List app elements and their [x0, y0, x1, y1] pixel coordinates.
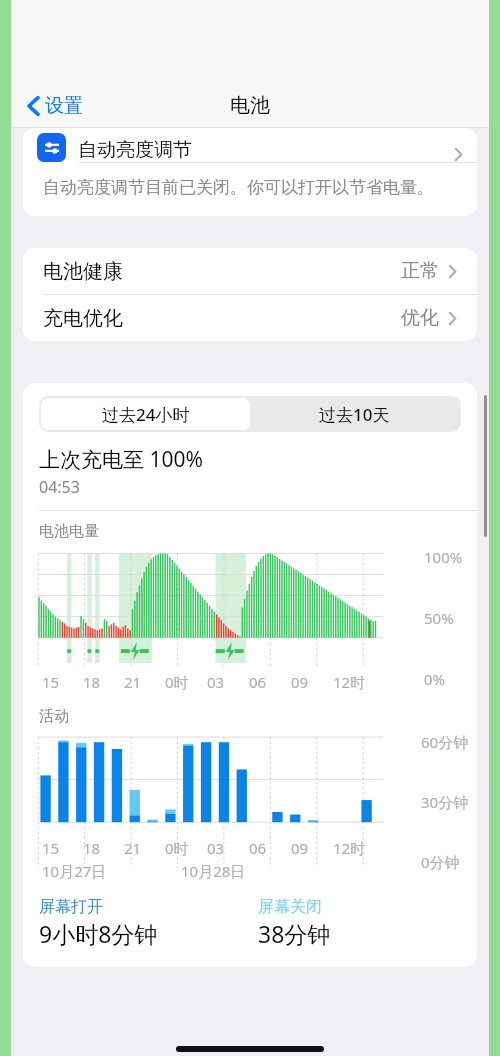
- staticText: 09: [291, 838, 309, 858]
- staticText: 18: [83, 672, 101, 692]
- staticText: 38分钟: [258, 918, 331, 949]
- staticText: 0时: [165, 672, 189, 692]
- staticText: 0时: [165, 838, 189, 858]
- staticText: 正常: [401, 259, 439, 283]
- staticText: 04:53: [39, 476, 80, 498]
- staticText: 过去10天: [319, 403, 390, 426]
- staticText: 过去24小时: [102, 403, 190, 426]
- staticText: 21: [124, 838, 142, 858]
- staticText: 30分钟: [421, 792, 469, 812]
- staticText: 电池健康: [43, 259, 401, 284]
- staticText: 上次充电至 100%: [39, 445, 203, 474]
- button[interactable]: 充电优化: [23, 295, 477, 341]
- staticText: 屏幕打开: [39, 897, 103, 917]
- button[interactable]: 设置: [23, 90, 87, 122]
- staticText: 12时: [333, 672, 366, 692]
- staticText: 自动亮度调节: [78, 138, 454, 162]
- staticText: 06: [249, 672, 267, 692]
- staticText: 屏幕关闭: [258, 897, 322, 917]
- staticText: 18: [83, 838, 101, 858]
- staticText: 21: [124, 672, 142, 692]
- staticText: 电池: [230, 93, 270, 118]
- staticText: 09: [291, 672, 309, 692]
- staticText: 0分钟: [421, 852, 460, 872]
- staticText: 15: [42, 672, 60, 692]
- staticText: 10月27日: [42, 861, 107, 881]
- staticText: 活动: [39, 707, 69, 726]
- button[interactable]: 过去24小时: [41, 398, 250, 430]
- staticText: 充电优化: [43, 306, 401, 331]
- staticText: 优化: [401, 306, 439, 330]
- staticText: 设置: [45, 94, 83, 118]
- staticText: 15: [42, 838, 60, 858]
- staticText: 12时: [333, 838, 366, 858]
- staticText: 50%: [424, 608, 454, 628]
- staticText: 0%: [424, 669, 446, 689]
- staticText: 9小时8分钟: [39, 918, 158, 949]
- staticText: 自动亮度调节目前已关闭。你可以打开以节省电量。: [43, 177, 434, 198]
- button[interactable]: 电池健康: [23, 248, 477, 294]
- staticText: 电池电量: [39, 522, 99, 541]
- staticText: 100%: [424, 547, 463, 567]
- staticText: 60分钟: [421, 732, 469, 752]
- button[interactable]: 自动亮度调节: [23, 128, 477, 162]
- staticText: 03: [207, 838, 225, 858]
- staticText: 03: [207, 672, 225, 692]
- staticText: 10月28日: [181, 861, 246, 881]
- button[interactable]: 过去10天: [250, 398, 459, 430]
- staticText: 06: [249, 838, 267, 858]
